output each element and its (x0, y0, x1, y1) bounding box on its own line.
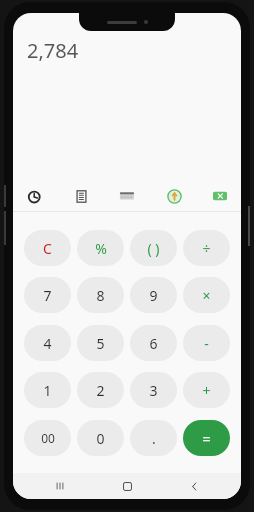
button[interactable]: 1 (24, 372, 71, 408)
button[interactable]: 3 (130, 372, 177, 408)
button[interactable]: . (130, 420, 177, 456)
staticText: . (152, 429, 156, 448)
staticText: 2 (96, 381, 105, 400)
staticText: 00 (41, 430, 55, 446)
staticText: 9 (149, 286, 158, 305)
staticText: × (202, 286, 211, 305)
button[interactable]: Convert (159, 181, 189, 211)
button[interactable]: 5 (77, 325, 124, 361)
staticText: 2,784 (27, 37, 79, 64)
button[interactable]: - (183, 325, 230, 361)
button[interactable]: 4 (24, 325, 71, 361)
button[interactable]: ÷ (183, 230, 230, 266)
button[interactable]: Back (174, 473, 214, 499)
staticText: 0 (96, 429, 105, 448)
button[interactable]: 9 (130, 277, 177, 313)
staticText: C (43, 239, 52, 258)
staticText: 1 (43, 381, 52, 400)
staticText: + (202, 381, 211, 400)
button[interactable]: 2 (77, 372, 124, 408)
button[interactable]: + (183, 372, 230, 408)
button[interactable]: = (183, 420, 230, 456)
staticText: ÷ (202, 239, 211, 258)
staticText: 7 (43, 286, 52, 305)
button[interactable]: History (19, 181, 49, 211)
button[interactable]: ( ) (130, 230, 177, 266)
staticText: 6 (149, 334, 158, 353)
button[interactable]: 6 (130, 325, 177, 361)
staticText: - (204, 334, 209, 353)
button[interactable]: 8 (77, 277, 124, 313)
button[interactable]: 00 (24, 420, 71, 456)
staticText: ( ) (147, 239, 160, 258)
staticText: 5 (96, 334, 105, 353)
button[interactable]: × (183, 277, 230, 313)
button[interactable]: Backspace (205, 181, 235, 211)
staticText: 4 (43, 334, 52, 353)
staticText: = (202, 429, 211, 448)
staticText: 8 (96, 286, 105, 305)
button[interactable]: Calculator mode (112, 181, 142, 211)
button[interactable]: % (77, 230, 124, 266)
button[interactable]: Notes (66, 181, 96, 211)
button[interactable]: Home (107, 473, 147, 499)
button[interactable]: C (24, 230, 71, 266)
button[interactable]: 7 (24, 277, 71, 313)
staticText: 3 (149, 381, 158, 400)
staticText: % (95, 239, 107, 258)
button[interactable]: Recents (40, 473, 80, 499)
button[interactable]: 0 (77, 420, 124, 456)
